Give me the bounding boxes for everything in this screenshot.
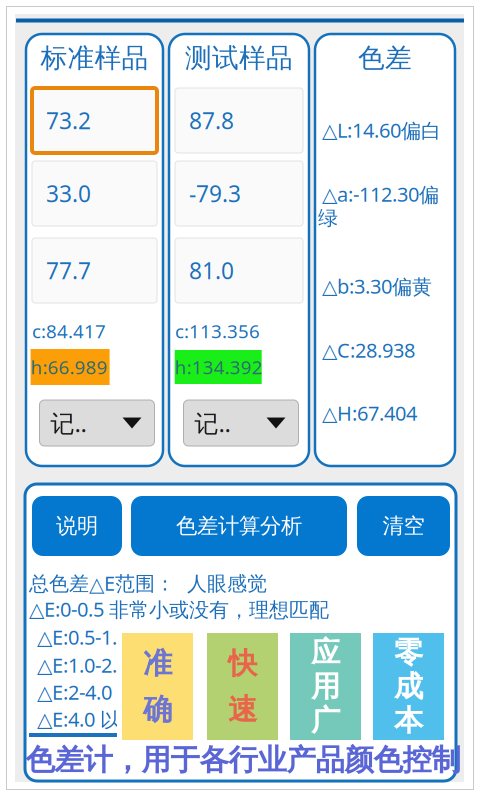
staticText: h:66.989: [31, 355, 108, 379]
staticText: △E:4.0 以上 大色差: [37, 706, 206, 732]
staticText: h:134.392: [175, 355, 263, 379]
staticText: 73.2: [46, 105, 91, 135]
staticText: 色差: [358, 42, 412, 74]
staticText: △C:28.938: [322, 337, 415, 363]
staticText: 绿: [318, 206, 338, 230]
button[interactable]: 81.0: [175, 238, 303, 303]
staticText: 81.0: [189, 255, 234, 285]
staticText: 87.8: [189, 105, 234, 135]
staticText: 应: [311, 634, 340, 670]
staticText: 色差计，用于各行业产品颜色控制: [25, 742, 460, 778]
button[interactable]: 说明: [32, 496, 122, 556]
staticText: 零: [394, 634, 423, 670]
staticText: c:84.417: [32, 319, 106, 343]
button[interactable]: 87.8: [175, 88, 303, 153]
staticText: 标准样品: [40, 42, 148, 74]
button[interactable]: 73.2: [32, 88, 157, 153]
staticText: △L:14.60偏白: [322, 117, 441, 143]
staticText: 记..: [50, 407, 86, 439]
staticText: 总色差△E范围： 人眼感觉: [29, 570, 267, 596]
staticText: 色差计算分析: [176, 513, 302, 539]
staticText: △H:67.404: [322, 400, 417, 426]
staticText: 清空: [382, 513, 424, 539]
staticText: 成: [394, 668, 423, 704]
button[interactable]: 77.7: [32, 238, 157, 303]
button[interactable]: 记录: [39, 400, 154, 446]
button[interactable]: 清空: [357, 496, 450, 556]
staticText: 本: [394, 702, 423, 738]
button[interactable]: 记录: [183, 400, 298, 446]
staticText: △E:0.5-1.0 微小色差: [37, 624, 213, 650]
staticText: 说明: [56, 513, 98, 539]
button[interactable]: 色差计算分析: [131, 496, 347, 556]
staticText: △b:3.30偏黄: [322, 273, 432, 299]
staticText: 77.7: [46, 255, 91, 285]
button[interactable]: -79.3: [175, 161, 303, 226]
staticText: -79.3: [189, 178, 241, 208]
staticText: 确: [143, 691, 172, 727]
staticText: 准: [143, 645, 172, 681]
staticText: △E:1.0-2.0 小色差: [37, 652, 193, 678]
staticText: 用: [311, 668, 340, 704]
staticText: 测试样品: [185, 42, 293, 74]
staticText: △a:-112.30偏: [322, 181, 439, 207]
staticText: 速: [228, 691, 257, 727]
staticText: c:113.356: [175, 319, 260, 343]
staticText: 快: [228, 645, 257, 681]
button[interactable]: 33.0: [32, 161, 157, 226]
staticText: 33.0: [46, 178, 91, 208]
staticText: △E:2-4.0 可察觉: [37, 679, 177, 705]
staticText: 广: [311, 702, 340, 738]
staticText: 记..: [194, 407, 230, 439]
staticText: △E:0-0.5 非常小或没有，理想匹配: [29, 596, 329, 622]
